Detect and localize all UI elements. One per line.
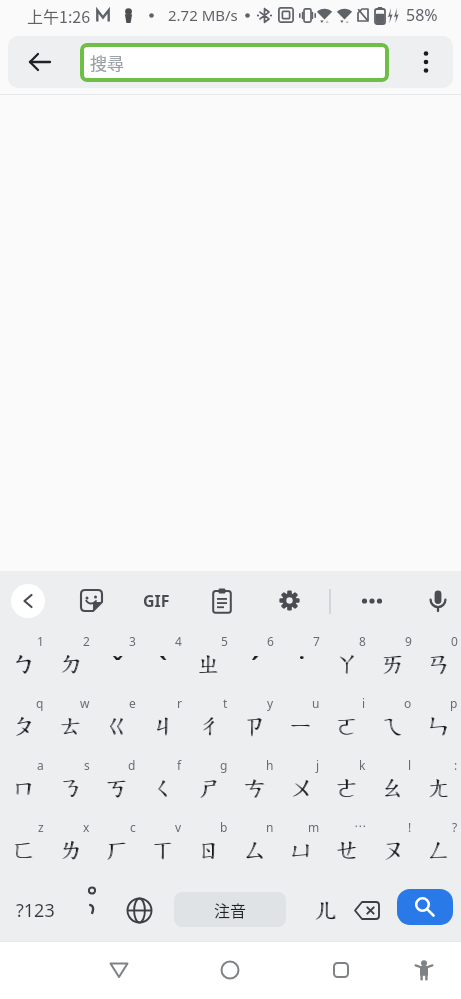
staticText: ㄕ <box>197 773 222 803</box>
staticText: 58% <box>406 4 438 26</box>
button[interactable]: ! <box>369 817 415 879</box>
staticText: ㄥ <box>428 835 453 865</box>
button[interactable]: ? <box>415 817 461 879</box>
button[interactable] <box>124 879 154 941</box>
button[interactable]: GIF <box>134 590 178 612</box>
button[interactable] <box>79 588 104 613</box>
button[interactable]: v <box>139 817 185 879</box>
staticText: ㄏ <box>105 835 130 865</box>
button[interactable]: w <box>47 693 93 755</box>
staticText: ㄥ <box>427 835 452 865</box>
staticText: ⋯ <box>354 819 366 833</box>
button[interactable] <box>361 590 383 612</box>
staticText: a <box>37 757 44 773</box>
staticText: ㄅ <box>13 649 38 679</box>
button[interactable]: e <box>93 693 139 755</box>
button[interactable] <box>279 590 300 611</box>
staticText: ㄌ <box>59 835 84 865</box>
button[interactable]: 0 <box>415 631 461 693</box>
button[interactable]: 3 <box>93 631 139 693</box>
button[interactable]: 5 <box>185 631 231 693</box>
staticText: ˊ <box>251 648 259 681</box>
button[interactable]: c <box>93 817 139 879</box>
staticText: e <box>129 695 136 711</box>
staticText: 注音 <box>214 898 247 921</box>
button[interactable]: 7 <box>277 631 323 693</box>
staticText: ㄑ <box>152 773 177 803</box>
button[interactable] <box>72 879 112 941</box>
button[interactable] <box>97 948 141 992</box>
button[interactable]: 4 <box>139 631 185 693</box>
staticText: ˋ <box>159 648 167 681</box>
button[interactable]: r <box>139 693 185 755</box>
button[interactable]: 9 <box>369 631 415 693</box>
button[interactable] <box>430 590 446 612</box>
button[interactable]: a <box>0 755 47 817</box>
staticText: ㄢ <box>428 649 453 679</box>
button[interactable] <box>402 948 446 992</box>
button[interactable]: y <box>231 693 277 755</box>
staticText: ㄒ <box>151 835 176 865</box>
button[interactable]: o <box>369 693 415 755</box>
staticText: s <box>84 757 90 773</box>
staticText: ㄐ <box>151 711 176 741</box>
button[interactable]: l <box>369 755 415 817</box>
button[interactable]: s <box>47 755 93 817</box>
staticText: ㄢ <box>427 649 452 679</box>
button[interactable] <box>319 948 363 992</box>
button[interactable]: h <box>231 755 277 817</box>
button[interactable] <box>397 889 453 925</box>
staticText: ㄆ <box>12 711 37 741</box>
button[interactable] <box>11 584 45 618</box>
button[interactable]: 8 <box>323 631 369 693</box>
button[interactable]: b <box>185 817 231 879</box>
button[interactable]: u <box>277 693 323 755</box>
button[interactable]: x <box>47 817 93 879</box>
staticText: ㄈ <box>12 835 37 865</box>
button[interactable]: ?123 <box>8 879 62 941</box>
button[interactable] <box>212 588 232 614</box>
staticText: 上午1:26 <box>27 4 91 27</box>
button[interactable]: m <box>277 817 323 879</box>
button[interactable]: 搜尋 <box>80 43 389 82</box>
button[interactable]: t <box>185 693 231 755</box>
staticText: ㄔ <box>198 711 223 741</box>
button[interactable]: f <box>139 755 185 817</box>
staticText: v <box>175 819 182 835</box>
button[interactable]: d <box>93 755 139 817</box>
button[interactable]: n <box>231 817 277 879</box>
staticText: ㄖ <box>198 835 223 865</box>
staticText: ㄇ <box>12 773 37 803</box>
button[interactable] <box>8 36 80 88</box>
button[interactable]: 1 <box>0 631 47 693</box>
button[interactable]: k <box>323 755 369 817</box>
button[interactable] <box>389 36 453 88</box>
button[interactable] <box>349 879 385 941</box>
button[interactable] <box>208 948 252 992</box>
staticText: ㄋ <box>59 773 84 803</box>
staticText: ㄜ <box>335 773 360 803</box>
button[interactable]: z <box>0 817 47 879</box>
button[interactable]: g <box>185 755 231 817</box>
staticText: ㄘ <box>243 773 268 803</box>
button[interactable]: ㄦ <box>304 879 348 941</box>
staticText: 2.72 MB/s <box>168 5 238 25</box>
button[interactable]: ⋯ <box>323 817 369 879</box>
button[interactable]: 6 <box>231 631 277 693</box>
button[interactable]: j <box>277 755 323 817</box>
staticText: ㄦ <box>315 895 340 925</box>
staticText: ㄤ <box>428 773 453 803</box>
staticText: ㄈ <box>13 835 38 865</box>
staticText: 9 <box>405 633 412 649</box>
button[interactable]: 2 <box>47 631 93 693</box>
button[interactable]: : <box>415 755 461 817</box>
button[interactable]: q <box>0 693 47 755</box>
button[interactable]: p <box>415 693 461 755</box>
button[interactable]: i <box>323 693 369 755</box>
staticText: ㄏ <box>106 835 131 865</box>
button[interactable]: 注音 <box>174 892 286 927</box>
staticText: w <box>80 695 90 711</box>
staticText: ㄘ <box>244 773 269 803</box>
staticText: n <box>266 819 274 835</box>
staticText: ㄣ <box>427 711 452 741</box>
